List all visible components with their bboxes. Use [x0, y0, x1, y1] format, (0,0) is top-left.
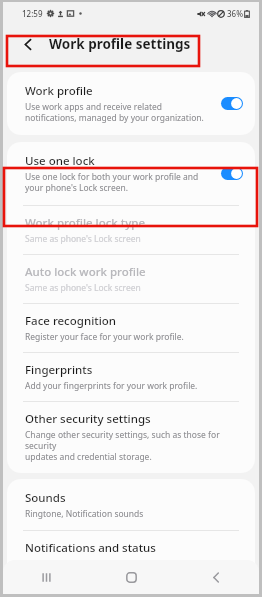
- button[interactable]: Work profile: [7, 72, 255, 135]
- button[interactable]: Sounds: [7, 479, 255, 530]
- button[interactable]: Back: [174, 560, 259, 594]
- staticText: Use work apps and receive related notifi…: [25, 101, 204, 123]
- button[interactable]: Use one lock: [7, 142, 255, 205]
- staticText: Use one lock for both your work profile …: [25, 171, 199, 193]
- button[interactable]: Back: [16, 32, 40, 56]
- button[interactable]: Face recognition: [7, 304, 255, 352]
- staticText: Add your fingerprints for your work prof…: [25, 380, 198, 392]
- staticText: Fingerprints: [25, 362, 93, 378]
- staticText: Same as phone's Lock screen: [25, 233, 141, 245]
- staticText: Other security settings: [25, 411, 151, 427]
- staticText: Use one lock: [25, 153, 95, 169]
- staticText: Work profile: [25, 83, 93, 99]
- staticText: Register your face for your work profile…: [25, 331, 184, 343]
- button[interactable]: Recent apps: [3, 560, 89, 594]
- staticText: Work profile settings: [49, 35, 191, 53]
- staticText: 36%: [227, 8, 243, 19]
- button[interactable]: Home: [89, 560, 174, 594]
- staticText: Work profile lock type: [25, 215, 145, 231]
- button[interactable]: Fingerprints: [7, 353, 255, 401]
- staticText: Change other security settings, such as …: [25, 429, 239, 462]
- staticText: Ringtone, Notification sounds: [25, 508, 144, 520]
- button[interactable]: Other security settings: [7, 402, 255, 473]
- button[interactable]: Work profile lock type: [7, 206, 255, 254]
- staticText: 12:59: [22, 8, 43, 19]
- button[interactable]: Notifications and status: [7, 531, 255, 590]
- staticText: Sounds: [25, 490, 66, 506]
- staticText: Same as phone's Lock screen: [25, 282, 141, 294]
- staticText: Auto lock work profile: [25, 264, 146, 280]
- staticText: Face recognition: [25, 313, 116, 329]
- button[interactable]: Auto lock work profile: [7, 255, 255, 303]
- staticText: Notifications and status: [25, 540, 156, 556]
